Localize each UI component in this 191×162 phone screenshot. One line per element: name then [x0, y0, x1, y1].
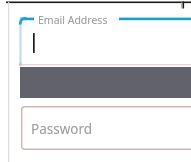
- button[interactable]: Password: [21, 106, 191, 150]
- staticText: Email Address: [38, 13, 108, 27]
- button[interactable]: Email Address field: [19, 16, 191, 66]
- staticText: Password: [31, 120, 93, 138]
